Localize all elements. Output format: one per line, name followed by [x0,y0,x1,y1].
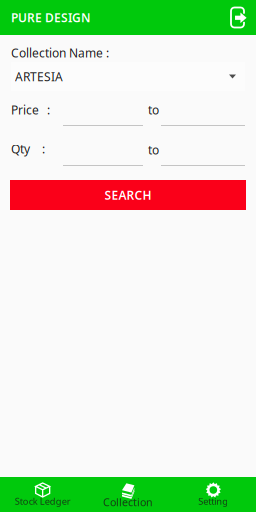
staticText: Setting [198,495,228,507]
staticText: to [148,142,159,158]
staticText: Collection [103,495,153,509]
button[interactable]: SEARCH [10,180,246,210]
staticText: SEARCH [104,187,151,203]
staticText: : [47,102,50,118]
staticText: Qty [11,141,30,157]
staticText: to [148,102,159,118]
button[interactable]: Collection [85,477,171,512]
button[interactable]: Log out [230,6,247,28]
staticText: Collection Name : [11,45,109,61]
button[interactable]: ARTESIA [11,62,245,91]
staticText: : [42,141,45,157]
staticText: PURE DESIGN [11,9,91,25]
button[interactable]: Stock Ledger [0,477,85,512]
staticText: Stock Ledger [15,495,71,507]
staticText: Price [11,102,39,118]
staticText: ARTESIA [15,68,63,84]
button[interactable]: Setting [171,477,256,512]
